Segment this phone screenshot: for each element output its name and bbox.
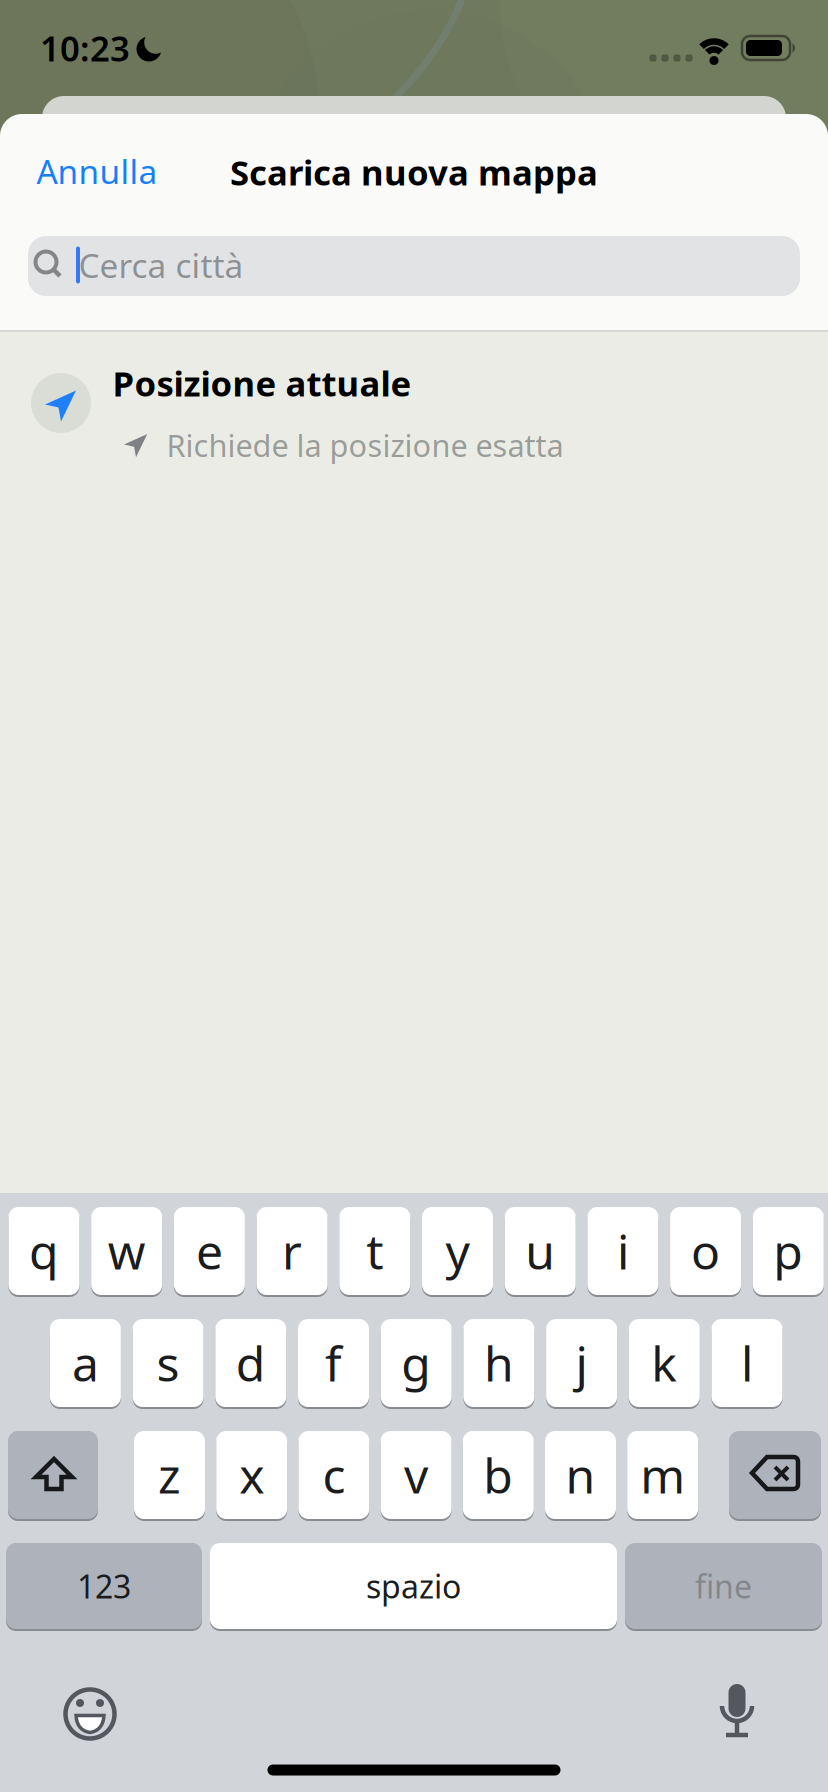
button[interactable]: j (546, 1318, 617, 1408)
button[interactable]: d (215, 1318, 286, 1408)
button[interactable]: a (50, 1318, 121, 1408)
button[interactable]: x (216, 1430, 287, 1520)
button[interactable]: m (627, 1430, 698, 1520)
staticText: t (366, 1219, 383, 1283)
button[interactable] (718, 1683, 756, 1741)
button[interactable]: z (134, 1430, 205, 1520)
staticText: y (445, 1219, 469, 1283)
staticText: k (651, 1331, 677, 1395)
staticText: spazio (366, 1565, 461, 1607)
staticText: l (741, 1331, 753, 1395)
staticText: g (401, 1331, 431, 1395)
staticText: o (691, 1219, 720, 1283)
button[interactable]: Annulla (36, 149, 157, 193)
button[interactable]: s (133, 1318, 204, 1408)
button[interactable] (63, 1687, 117, 1741)
button[interactable]: r (257, 1206, 328, 1296)
button[interactable]: q (8, 1206, 79, 1296)
staticText: b (483, 1443, 513, 1507)
staticText: n (565, 1443, 595, 1507)
button[interactable]: v (381, 1430, 452, 1520)
button[interactable]: e (174, 1206, 245, 1296)
staticText: Posizione attuale (112, 360, 411, 406)
button[interactable]: o (670, 1206, 741, 1296)
staticText: 10:23 (40, 25, 130, 71)
staticText: u (525, 1219, 555, 1283)
button[interactable]: Posizione attuale (0, 345, 828, 485)
button[interactable]: w (91, 1206, 162, 1296)
staticText: e (196, 1219, 223, 1283)
button[interactable]: h (463, 1318, 534, 1408)
staticText: p (773, 1219, 803, 1283)
button[interactable]: b (463, 1430, 534, 1520)
staticText: c (322, 1443, 345, 1507)
button[interactable]: f (298, 1318, 369, 1408)
staticText: h (484, 1331, 514, 1395)
button[interactable]: spazio (210, 1542, 617, 1630)
staticText: v (404, 1443, 428, 1507)
staticText: Cerca città (78, 243, 243, 287)
staticText: Scarica nuova mappa (230, 149, 598, 195)
staticText: fine (695, 1565, 752, 1607)
staticText: q (29, 1219, 59, 1283)
button[interactable]: 123 (6, 1542, 202, 1630)
staticText: a (72, 1331, 99, 1395)
button[interactable]: p (753, 1206, 824, 1296)
button[interactable] (729, 1430, 821, 1520)
button[interactable]: i (587, 1206, 658, 1296)
button[interactable]: u (505, 1206, 576, 1296)
button[interactable]: fine (625, 1542, 822, 1630)
button[interactable] (8, 1430, 98, 1520)
button[interactable]: n (545, 1430, 616, 1520)
button[interactable]: y (422, 1206, 493, 1296)
staticText: x (239, 1443, 264, 1507)
staticText: z (158, 1443, 181, 1507)
button[interactable]: Cerca città (28, 236, 800, 296)
button[interactable]: k (629, 1318, 700, 1408)
staticText: Annulla (36, 149, 157, 193)
button[interactable]: c (298, 1430, 369, 1520)
staticText: f (325, 1331, 342, 1395)
button[interactable]: g (381, 1318, 452, 1408)
staticText: i (617, 1219, 629, 1283)
staticText: j (576, 1331, 588, 1395)
staticText: w (108, 1219, 146, 1283)
staticText: s (157, 1331, 180, 1395)
staticText: 123 (77, 1565, 131, 1607)
staticText: d (236, 1331, 266, 1395)
button[interactable]: t (339, 1206, 410, 1296)
button[interactable]: l (711, 1318, 782, 1408)
staticText: Richiede la posizione esatta (166, 425, 563, 465)
staticText: m (640, 1443, 685, 1507)
staticText: r (282, 1219, 302, 1283)
